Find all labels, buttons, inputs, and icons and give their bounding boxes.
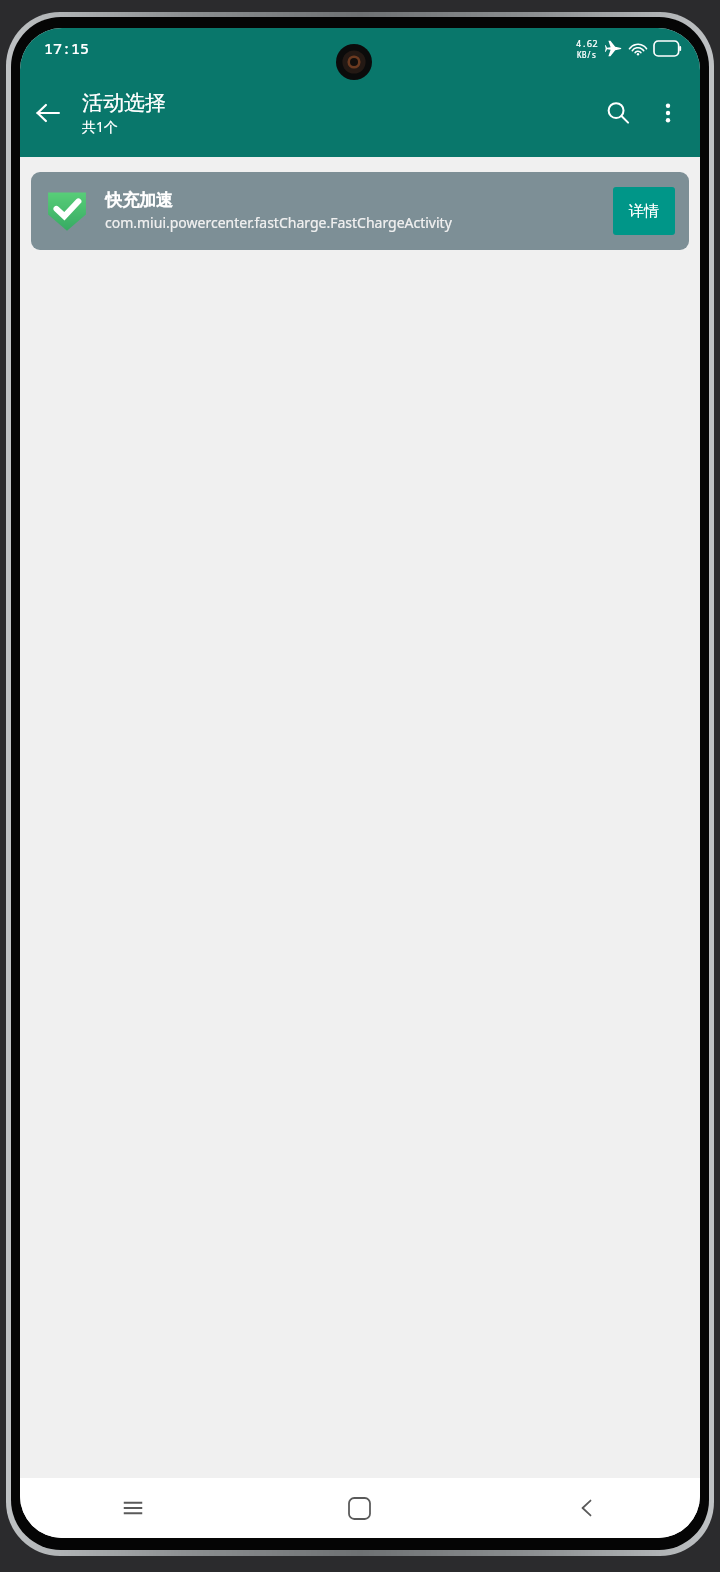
- staticText: 17:15: [44, 38, 90, 58]
- staticText: 活动选择: [82, 90, 166, 116]
- button[interactable]: 快充加速: [31, 172, 689, 250]
- button[interactable]: 详情: [613, 187, 675, 235]
- button[interactable]: More options: [644, 89, 692, 137]
- button[interactable]: Back: [20, 85, 76, 141]
- button[interactable]: Back: [473, 1478, 700, 1538]
- staticText: 共1个: [82, 117, 119, 136]
- button[interactable]: Home: [246, 1478, 473, 1538]
- button[interactable]: Search: [592, 87, 644, 139]
- staticText: KB/s: [577, 49, 597, 60]
- button[interactable]: Recent apps: [20, 1478, 246, 1538]
- staticText: 快充加速: [105, 190, 173, 211]
- staticText: 4.62: [576, 37, 598, 49]
- staticText: com.miui.powercenter.fastCharge.FastChar…: [105, 213, 452, 232]
- staticText: 详情: [629, 202, 659, 221]
